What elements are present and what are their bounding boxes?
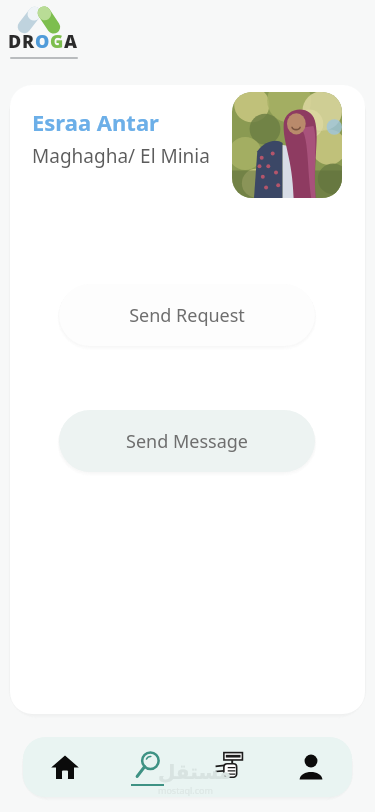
staticText: R — [22, 29, 35, 54]
staticText: Send Message — [126, 429, 248, 454]
button[interactable]: Search — [106, 737, 188, 797]
staticText: Maghagha/ El Minia — [32, 143, 210, 169]
staticText: D — [8, 29, 22, 54]
button[interactable]: Send Request — [59, 284, 315, 346]
staticText: G — [50, 29, 64, 54]
staticText: A — [64, 29, 78, 54]
staticText: mostaql.com — [158, 784, 213, 796]
button[interactable]: Home — [23, 737, 106, 797]
button[interactable]: Send Message — [59, 410, 315, 472]
button[interactable]: Help — [188, 737, 270, 797]
staticText: Esraa Antar — [32, 107, 159, 137]
staticText: O — [35, 29, 50, 54]
staticText: Send Request — [129, 303, 245, 328]
staticText: مستقل — [158, 760, 232, 783]
button[interactable]: Profile — [270, 737, 352, 797]
